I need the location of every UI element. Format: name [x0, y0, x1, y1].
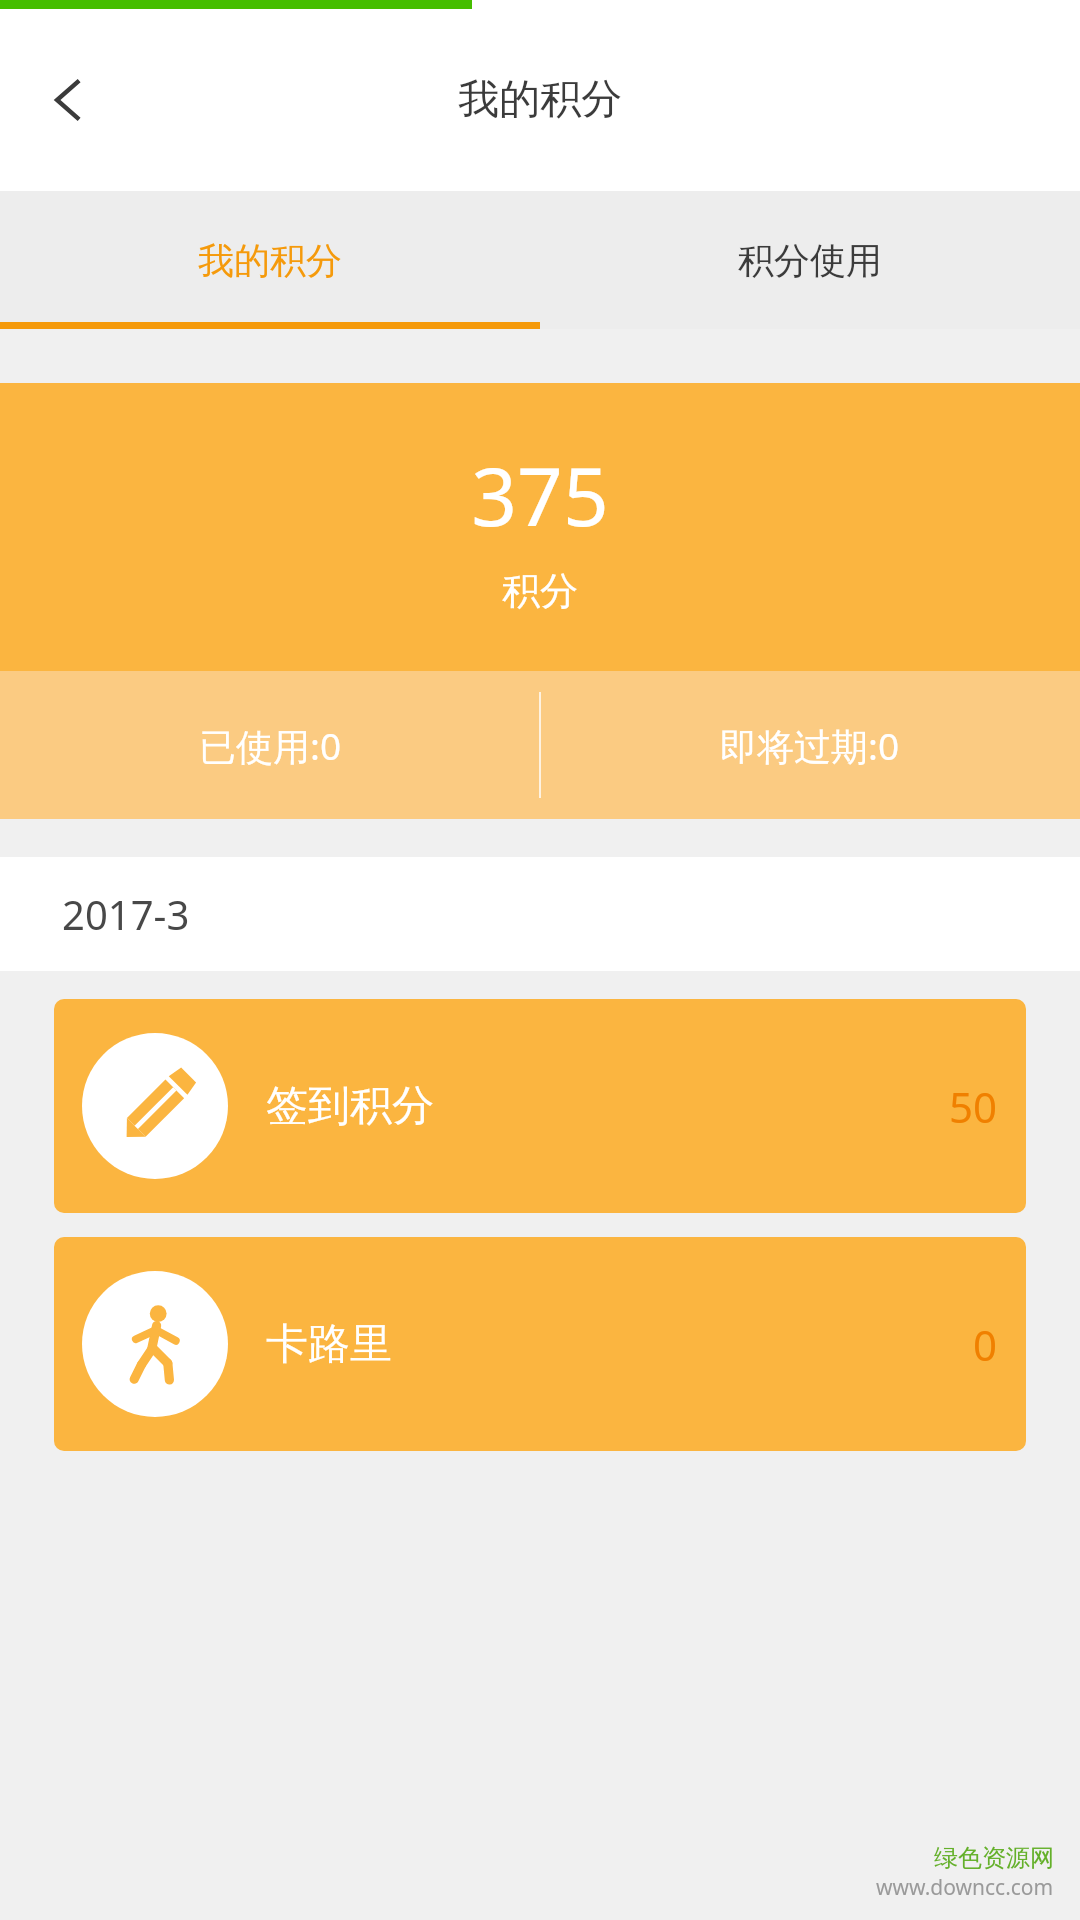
staticText: 积分使用: [738, 238, 882, 283]
button[interactable]: 即将过期:0: [540, 671, 1080, 819]
staticText: 0: [973, 1316, 998, 1373]
staticText: 我的积分: [458, 74, 622, 126]
staticText: 签到积分: [266, 1080, 434, 1133]
button[interactable]: 积分使用: [540, 191, 1080, 329]
button[interactable]: 签到积分: [54, 999, 1026, 1213]
staticText: www.downcc.com: [876, 1873, 1054, 1902]
staticText: 卡路里: [266, 1318, 392, 1371]
staticText: 50: [949, 1078, 998, 1135]
staticText: 我的积分: [198, 238, 342, 283]
button[interactable]: 已使用:0: [0, 671, 540, 819]
staticText: 即将过期:0: [720, 720, 900, 771]
button[interactable]: 我的积分: [0, 191, 540, 329]
button[interactable]: Back: [24, 55, 114, 145]
staticText: 2017-3: [62, 887, 190, 941]
staticText: 积分: [502, 567, 578, 615]
staticText: 已使用:0: [199, 720, 342, 771]
staticText: 375: [471, 440, 609, 549]
staticText: 绿色资源网: [934, 1843, 1054, 1873]
button[interactable]: 卡路里: [54, 1237, 1026, 1451]
